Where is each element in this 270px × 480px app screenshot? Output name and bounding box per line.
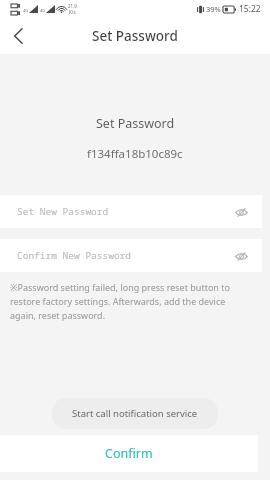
staticText: Confirm New Password xyxy=(17,249,132,262)
staticText: 21.9 xyxy=(68,3,77,9)
staticText: 15:22 xyxy=(239,3,261,15)
button[interactable]: Start call notification service xyxy=(52,398,218,429)
staticText: Set New Password xyxy=(17,205,109,218)
staticText: ※Password setting failed, long press res… xyxy=(10,281,252,321)
button[interactable]: Show password xyxy=(230,201,252,223)
button[interactable]: Set New Password xyxy=(0,195,262,228)
staticText: 4G xyxy=(23,8,29,13)
staticText: 4G xyxy=(40,8,46,13)
button[interactable]: Show password xyxy=(230,245,252,267)
staticText: Start call notification service xyxy=(72,407,198,420)
staticText: 39% xyxy=(206,4,221,14)
button[interactable]: Back xyxy=(0,18,36,54)
staticText: K/s xyxy=(69,9,76,15)
staticText: Confirm xyxy=(105,445,153,462)
button[interactable]: Confirm xyxy=(0,435,258,472)
button[interactable]: Confirm New Password xyxy=(0,239,262,272)
staticText: Set Password xyxy=(96,115,175,132)
staticText: f134ffa18b10c89c xyxy=(87,146,183,162)
staticText: Set Password xyxy=(92,27,178,45)
